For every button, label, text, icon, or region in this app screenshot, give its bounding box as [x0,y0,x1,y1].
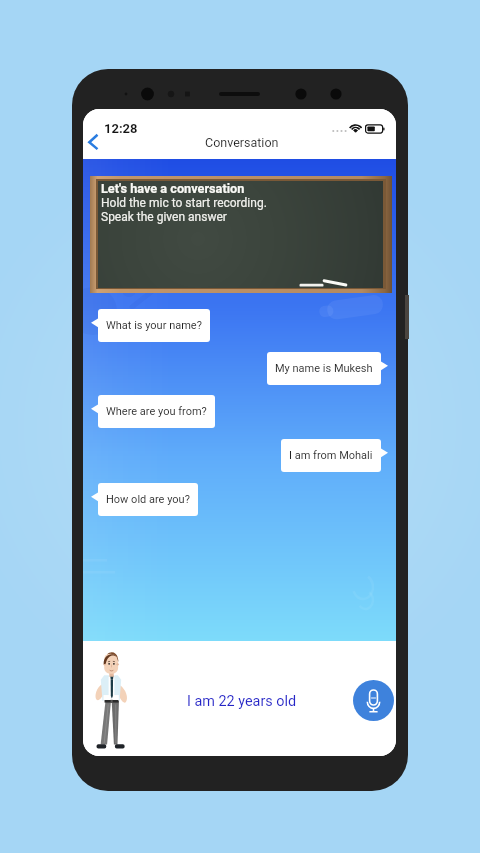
staticText: Speak the given answer [101,210,227,224]
staticText: Let's have a conversation [101,181,245,196]
button[interactable]: What is your name? [91,309,210,342]
staticText: My name is Mukesh [275,362,373,375]
button[interactable]: Back [85,128,111,154]
button[interactable]: I am from Mohali [281,439,388,472]
staticText: How old are you? [106,493,190,506]
staticText: 12:28 [104,121,138,136]
button[interactable]: How old are you? [91,483,198,516]
button[interactable]: Where are you from? [91,395,215,428]
staticText: Hold the mic to start recording. [101,196,267,210]
button[interactable]: Record voice [353,680,394,721]
staticText: I am 22 years old [187,693,297,710]
button[interactable]: My name is Mukesh [267,352,388,385]
staticText: What is your name? [106,319,202,332]
staticText: I am from Mohali [289,449,373,462]
staticText: Conversation [205,135,279,150]
staticText: Where are you from? [106,405,207,418]
